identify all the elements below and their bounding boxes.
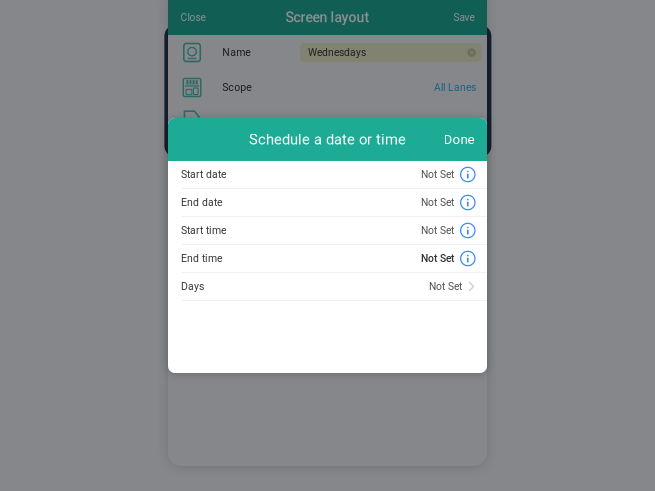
button[interactable]: Scope	[168, 70, 487, 105]
staticText: ✕	[469, 48, 475, 57]
button[interactable]: Save	[453, 12, 474, 23]
staticText: Close	[180, 12, 205, 23]
staticText: Start time	[181, 224, 227, 237]
staticText: All Lanes	[434, 81, 476, 93]
staticText: Not Set	[421, 196, 454, 208]
button[interactable]: Name	[168, 35, 487, 70]
staticText: Days	[181, 280, 204, 293]
staticText: Not Set	[421, 168, 454, 180]
staticText: Not Set	[421, 252, 454, 264]
staticText: Done	[443, 132, 474, 147]
button[interactable]: End date	[168, 189, 487, 217]
button[interactable]: Start date	[168, 161, 487, 189]
staticText: Screen layout	[285, 9, 369, 26]
staticText: Wednesdays	[308, 46, 366, 58]
staticText: End date	[181, 196, 223, 209]
button[interactable]: Start time	[168, 217, 487, 245]
button[interactable]: Days	[168, 273, 487, 301]
staticText: Save	[453, 12, 474, 23]
staticText: Scope	[222, 81, 252, 94]
button[interactable]: Done	[443, 132, 474, 147]
staticText: Not Set	[421, 224, 454, 236]
staticText: Not Set	[429, 280, 462, 292]
staticText: End time	[181, 252, 223, 265]
button[interactable]: Close	[180, 12, 205, 23]
button[interactable]: End time	[168, 245, 487, 273]
staticText: Name	[222, 46, 251, 59]
staticText: Start date	[181, 168, 227, 181]
staticText: Schedule a date or time	[249, 131, 406, 148]
